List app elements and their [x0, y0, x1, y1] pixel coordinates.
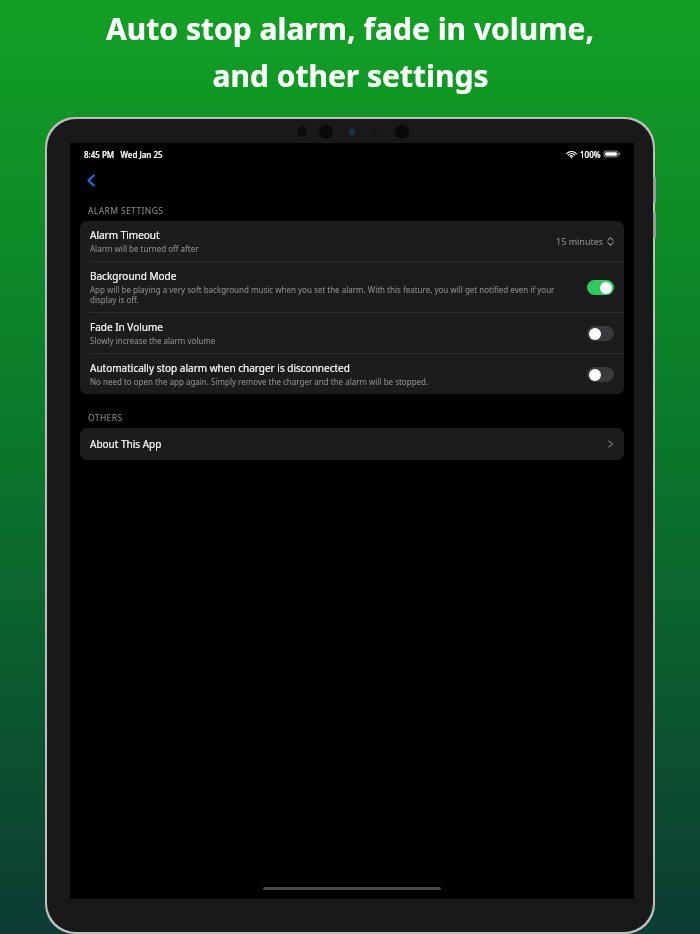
- staticText: and other settings: [212, 55, 489, 96]
- staticText: Alarm Timeout: [90, 228, 160, 242]
- staticText: Automatically stop alarm when charger is…: [90, 361, 350, 375]
- button[interactable]: Back: [78, 167, 104, 193]
- button[interactable]: Fade In Volume: [80, 313, 624, 353]
- button[interactable]: Toggle off: [587, 367, 614, 382]
- staticText: Alarm will be turned off after: [90, 243, 199, 254]
- staticText: OTHERS: [88, 412, 123, 424]
- staticText: 100%: [580, 149, 601, 160]
- staticText: Fade In Volume: [90, 320, 163, 334]
- staticText: Slowly increase the alarm volume: [90, 335, 216, 346]
- staticText: 8:45 PM Wed Jan 25: [84, 149, 163, 160]
- staticText: App will be playing a very soft backgrou…: [90, 284, 579, 305]
- staticText: Auto stop alarm, fade in volume,: [106, 8, 594, 49]
- staticText: Background Mode: [90, 269, 177, 283]
- staticText: About This App: [90, 437, 608, 451]
- button[interactable]: Background Mode: [80, 262, 624, 312]
- button[interactable]: Automatically stop alarm when charger is…: [80, 354, 624, 394]
- staticText: ALARM SETTINGS: [88, 205, 164, 217]
- button[interactable]: Alarm Timeout: [80, 221, 624, 261]
- button[interactable]: About This App: [80, 428, 624, 460]
- staticText: 15 minutes: [556, 235, 604, 247]
- button[interactable]: Toggle on: [587, 280, 614, 295]
- button[interactable]: Toggle off: [587, 326, 614, 341]
- staticText: No need to open the app again. Simply re…: [90, 376, 429, 387]
